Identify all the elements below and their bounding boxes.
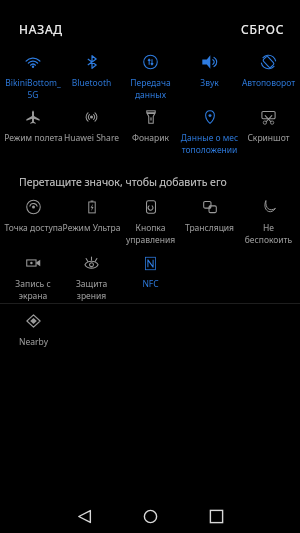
button[interactable]: Bluetooth bbox=[62, 55, 121, 89]
staticText: NFC bbox=[121, 278, 180, 290]
staticText: Запись с экрана bbox=[4, 278, 62, 302]
staticText: Режим Ультра bbox=[62, 222, 121, 234]
button[interactable]: НАЗАД bbox=[0, 7, 79, 43]
staticText: Кнопка управления bbox=[121, 222, 180, 246]
button[interactable]: Запись с экрана bbox=[4, 256, 62, 302]
button[interactable]: СБРОС bbox=[225, 7, 300, 43]
staticText: Nearby bbox=[4, 336, 63, 348]
staticText: Bluetooth bbox=[62, 77, 121, 89]
button[interactable]: Автоповорот bbox=[239, 55, 298, 89]
button[interactable]: Back bbox=[51, 500, 117, 533]
staticText: Автоповорот bbox=[239, 77, 298, 89]
button[interactable]: Кнопка управления bbox=[121, 200, 180, 246]
button[interactable]: Режим полета bbox=[4, 110, 62, 144]
button[interactable]: Huawei Share bbox=[62, 110, 121, 144]
button[interactable]: Фонарик bbox=[121, 110, 180, 144]
button[interactable]: BikiniBottom_ 5G bbox=[4, 55, 62, 101]
staticText: Фонарик bbox=[121, 132, 180, 144]
button[interactable]: Точка доступа bbox=[4, 200, 62, 234]
staticText: СБРОС bbox=[241, 21, 285, 37]
button[interactable]: Recents bbox=[183, 500, 249, 533]
staticText: Передача данных bbox=[121, 77, 180, 101]
staticText: BikiniBottom_ 5G bbox=[4, 77, 62, 101]
staticText: Данные о мес тоположении bbox=[180, 132, 239, 156]
staticText: НАЗАД bbox=[19, 21, 63, 37]
button[interactable]: Данные о мес тоположении bbox=[180, 110, 239, 156]
staticText: Перетащите значок, чтобы добавить его bbox=[19, 175, 227, 189]
staticText: Трансляция bbox=[180, 222, 239, 234]
button[interactable]: Защита зрения bbox=[62, 256, 121, 302]
staticText: Huawei Share bbox=[62, 132, 121, 144]
staticText: Защита зрения bbox=[62, 278, 121, 302]
staticText: Точка доступа bbox=[4, 222, 62, 234]
button[interactable]: Скриншот bbox=[239, 110, 298, 144]
button[interactable]: Передача данных bbox=[121, 55, 180, 101]
staticText: Звук bbox=[180, 77, 239, 89]
button[interactable]: Режим Ультра bbox=[62, 200, 121, 234]
button[interactable]: Не беспокоить bbox=[239, 200, 298, 246]
staticText: Режим полета bbox=[4, 132, 62, 144]
button[interactable]: Home bbox=[117, 500, 183, 533]
button[interactable]: Трансляция bbox=[180, 200, 239, 234]
button[interactable]: Nearby bbox=[4, 314, 63, 348]
staticText: Скриншот bbox=[239, 132, 298, 144]
button[interactable]: Звук bbox=[180, 55, 239, 89]
button[interactable]: NFC bbox=[121, 256, 180, 290]
staticText: Не беспокоить bbox=[239, 222, 298, 246]
